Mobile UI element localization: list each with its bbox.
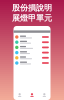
button[interactable]: List item	[13, 40, 50, 45]
button[interactable]: Tab 2	[26, 90, 38, 100]
button[interactable]: Tab 1	[13, 90, 26, 100]
button[interactable]: Tab 3	[38, 90, 50, 100]
staticText: 股份損說明	[12, 3, 52, 13]
button[interactable]: List item	[13, 60, 50, 66]
staticText: 展燈甲單元	[12, 13, 52, 23]
button[interactable]: List item	[13, 55, 50, 60]
button[interactable]: List item	[13, 50, 50, 55]
button[interactable]: List item	[13, 34, 50, 40]
button[interactable]: List item	[13, 45, 50, 50]
